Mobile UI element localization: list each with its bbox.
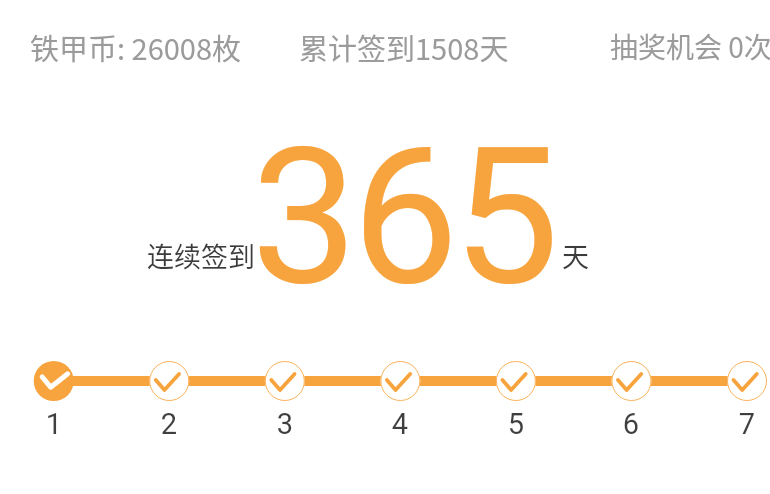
staticText: 7 (717, 407, 770, 441)
staticText: 连续签到 (147, 236, 255, 275)
staticText: 6 (601, 407, 661, 441)
staticText: 1 (24, 407, 84, 441)
staticText: 5 (486, 407, 546, 441)
staticText: 365 (251, 106, 554, 329)
staticText: 4 (370, 407, 430, 441)
staticText: 2 (139, 407, 199, 441)
button[interactable]: 抽奖机会 0次 (610, 26, 770, 67)
button[interactable]: 累计签到1508天 (299, 26, 509, 68)
staticText: 天 (562, 236, 589, 275)
staticText: 3 (255, 407, 315, 441)
button[interactable]: 铁甲币: 26008枚 (30, 26, 242, 68)
